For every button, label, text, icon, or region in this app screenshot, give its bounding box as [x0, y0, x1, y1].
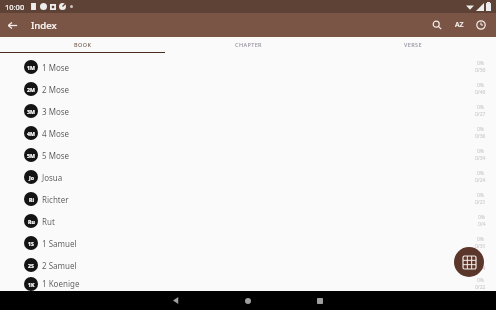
staticText: 0/31	[475, 243, 486, 250]
button[interactable]: Ru	[0, 210, 496, 232]
staticText: 0/4	[478, 221, 486, 228]
button[interactable]: History	[470, 14, 492, 36]
button[interactable]: 1S	[0, 232, 496, 254]
button[interactable]: Home	[230, 291, 266, 310]
staticText: Ru	[28, 218, 35, 225]
staticText: 0/50	[475, 67, 486, 74]
staticText: 2 Mose	[42, 84, 70, 95]
staticText: 1M	[27, 64, 35, 71]
staticText: 3M	[27, 108, 35, 115]
staticText: 5 Mose	[42, 150, 70, 161]
staticText: 0%	[477, 126, 485, 133]
button[interactable]: VERSE	[331, 37, 496, 52]
staticText: 0%	[477, 60, 485, 67]
staticText: 1 Samuel	[42, 238, 77, 249]
button[interactable]: Sort alphabetically	[448, 14, 470, 36]
staticText: Rut	[42, 216, 55, 227]
staticText: 1K	[28, 281, 35, 288]
staticText: 10:00	[5, 2, 25, 12]
staticText: 0/36	[475, 133, 486, 140]
staticText: 0%	[477, 82, 485, 89]
button[interactable]: 1K	[0, 276, 496, 291]
staticText: 0/40	[475, 89, 486, 96]
button[interactable]: Open grid	[454, 247, 484, 277]
staticText: 0%	[477, 277, 485, 284]
staticText: 0/27	[475, 111, 486, 118]
button[interactable]: 5M	[0, 144, 496, 166]
staticText: 1 Koenige	[42, 278, 80, 289]
button[interactable]: BOOK	[0, 37, 166, 52]
staticText: VERSE	[404, 41, 423, 48]
button[interactable]: Search	[426, 14, 448, 36]
button[interactable]: 2M	[0, 78, 496, 100]
staticText: AZ	[455, 20, 464, 30]
button[interactable]: 4M	[0, 122, 496, 144]
staticText: 0%	[477, 236, 485, 243]
button[interactable]: 3M	[0, 100, 496, 122]
button[interactable]: 1M	[0, 56, 496, 78]
staticText: Ri	[29, 196, 34, 203]
button[interactable]: Recent apps	[302, 291, 338, 310]
staticText: Josua	[42, 172, 63, 183]
staticText: 0/34	[475, 155, 486, 162]
staticText: 0%	[477, 148, 485, 155]
staticText: CHAPTER	[235, 41, 262, 48]
staticText: 0/24	[475, 177, 486, 184]
staticText: 2 Samuel	[42, 260, 77, 271]
button[interactable]: Ri	[0, 188, 496, 210]
staticText: 0/24	[475, 265, 486, 272]
staticText: 0/22	[475, 284, 486, 291]
staticText: 1 Mose	[42, 62, 70, 73]
staticText: 4 Mose	[42, 128, 70, 139]
staticText: 0%	[477, 104, 485, 111]
staticText: 2S	[28, 262, 34, 269]
button[interactable]: CHAPTER	[166, 37, 331, 52]
staticText: 3 Mose	[42, 106, 70, 117]
staticText: 0/21	[475, 199, 486, 206]
staticText: 1S	[28, 240, 34, 247]
staticText: 2M	[27, 86, 35, 93]
button[interactable]: 2S	[0, 254, 496, 276]
button[interactable]: Back	[0, 13, 24, 37]
staticText: BOOK	[74, 41, 92, 48]
staticText: Jo	[29, 174, 34, 181]
staticText: 0%	[477, 170, 485, 177]
staticText: 4M	[27, 130, 35, 137]
button[interactable]: Back	[158, 291, 194, 310]
staticText: 0%	[477, 258, 485, 265]
staticText: Richter	[42, 194, 69, 205]
staticText: 0%	[478, 214, 486, 221]
staticText: 0%	[477, 192, 485, 199]
button[interactable]: Jo	[0, 166, 496, 188]
staticText: Index	[31, 19, 57, 32]
staticText: 5M	[27, 152, 35, 159]
